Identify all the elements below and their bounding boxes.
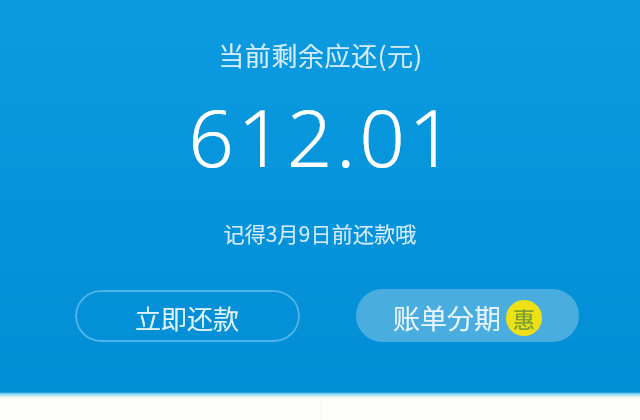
- staticText: 账单分期: [393, 298, 501, 337]
- staticText: 当前剩余应还(元): [218, 36, 423, 74]
- staticText: 记得3月9日前还款哦: [223, 218, 417, 248]
- staticText: 612.01: [188, 81, 458, 190]
- staticText: 立即还款: [135, 299, 240, 337]
- staticText: 惠: [513, 302, 536, 334]
- button[interactable]: 立即还款: [75, 290, 300, 342]
- button[interactable]: 账单分期: [356, 289, 579, 342]
